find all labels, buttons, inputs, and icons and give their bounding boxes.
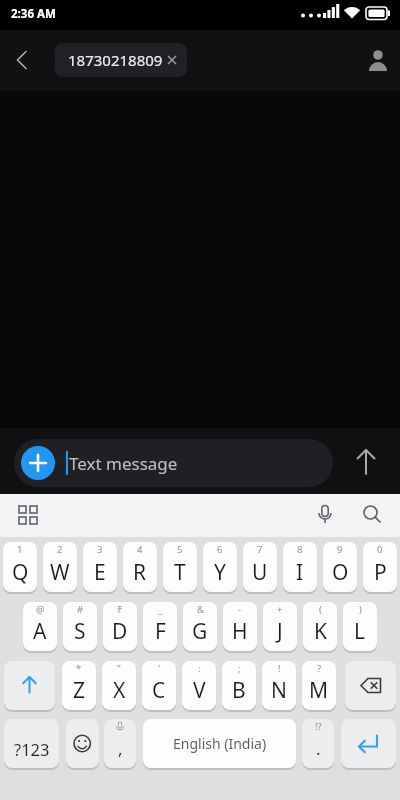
staticText: (: [319, 603, 322, 616]
staticText: ": [117, 662, 121, 675]
staticText: 2:36 AM: [11, 6, 56, 22]
button[interactable]: ?: [302, 661, 336, 710]
staticText: ?123: [14, 738, 50, 760]
button[interactable]: [348, 444, 384, 480]
staticText: &: [197, 603, 204, 616]
staticText: 8: [297, 543, 303, 556]
staticText: 9: [337, 543, 343, 556]
button[interactable]: ;: [222, 661, 256, 710]
button[interactable]: [341, 719, 396, 768]
button[interactable]: [311, 501, 339, 529]
staticText: H: [232, 617, 248, 646]
button[interactable]: Text message: [14, 439, 333, 487]
staticText: English (India): [173, 734, 267, 753]
button[interactable]: :: [182, 661, 216, 710]
staticText: 5: [177, 543, 183, 556]
button[interactable]: [21, 446, 55, 480]
staticText: L: [354, 617, 366, 646]
staticText: A: [33, 617, 47, 646]
staticText: ?: [317, 662, 322, 675]
button[interactable]: #: [63, 602, 97, 651]
staticText: I: [296, 558, 304, 587]
staticText: 2: [57, 543, 63, 556]
staticText: B: [232, 676, 246, 705]
staticText: :: [198, 662, 201, 675]
staticText: S: [74, 617, 86, 646]
staticText: ,: [118, 737, 123, 760]
staticText: W: [50, 558, 70, 587]
button[interactable]: *: [62, 661, 96, 710]
staticText: G: [192, 617, 208, 646]
staticText: *: [76, 662, 82, 675]
staticText: +: [277, 603, 283, 616]
staticText: ₹: [117, 603, 123, 616]
staticText: C: [152, 676, 166, 705]
staticText: Text message: [69, 452, 178, 475]
button[interactable]: ,: [104, 719, 136, 768]
button[interactable]: [8, 46, 36, 74]
staticText: D: [112, 617, 128, 646]
button[interactable]: ): [343, 602, 377, 651]
button[interactable]: 5: [163, 542, 197, 592]
staticText: 0: [377, 543, 383, 556]
staticText: K: [314, 617, 327, 646]
staticText: Y: [214, 558, 226, 587]
button[interactable]: ?123: [4, 719, 59, 768]
button[interactable]: 1: [3, 542, 37, 592]
button[interactable]: [362, 44, 394, 76]
button[interactable]: 7: [243, 542, 277, 592]
staticText: P: [374, 558, 387, 587]
button[interactable]: [14, 501, 42, 529]
staticText: J: [277, 617, 283, 646]
button[interactable]: 8: [283, 542, 317, 592]
staticText: 3: [97, 543, 103, 556]
button[interactable]: ₹: [103, 602, 137, 651]
button[interactable]: 3: [83, 542, 117, 592]
staticText: _: [158, 603, 163, 616]
staticText: U: [252, 558, 268, 587]
button[interactable]: [345, 661, 396, 710]
staticText: R: [133, 558, 147, 587]
staticText: -: [238, 603, 242, 616]
button[interactable]: 4: [123, 542, 157, 592]
staticText: ': [158, 662, 161, 675]
staticText: 1: [17, 543, 23, 556]
staticText: X: [113, 676, 126, 705]
staticText: !?: [315, 720, 322, 733]
staticText: Q: [12, 558, 29, 587]
staticText: 6: [217, 543, 223, 556]
staticText: 7: [257, 543, 263, 556]
button[interactable]: English (India): [143, 719, 296, 768]
button[interactable]: +: [263, 602, 297, 651]
button[interactable]: &: [183, 602, 217, 651]
staticText: ): [359, 603, 362, 616]
button[interactable]: _: [143, 602, 177, 651]
button[interactable]: [66, 719, 99, 768]
staticText: Z: [73, 676, 86, 705]
button[interactable]: 18730218809: [55, 43, 187, 77]
button[interactable]: ': [142, 661, 176, 710]
button[interactable]: @: [23, 602, 57, 651]
button[interactable]: (: [303, 602, 337, 651]
button[interactable]: -: [223, 602, 257, 651]
staticText: N: [271, 676, 287, 705]
button[interactable]: 6: [203, 542, 237, 592]
staticText: 4: [137, 543, 143, 556]
staticText: .: [316, 737, 321, 760]
staticText: #: [77, 603, 84, 616]
staticText: O: [332, 558, 349, 587]
staticText: M: [309, 676, 329, 705]
button[interactable]: [358, 501, 386, 529]
staticText: ;: [238, 662, 241, 675]
button[interactable]: 0: [363, 542, 397, 592]
button[interactable]: 2: [43, 542, 77, 592]
staticText: V: [193, 676, 206, 705]
staticText: F: [155, 617, 166, 646]
button[interactable]: [4, 661, 55, 710]
button[interactable]: !?: [302, 719, 334, 768]
staticText: !: [278, 662, 281, 675]
button[interactable]: !: [262, 661, 296, 710]
button[interactable]: ": [102, 661, 136, 710]
button[interactable]: 9: [323, 542, 357, 592]
staticText: T: [174, 558, 186, 587]
